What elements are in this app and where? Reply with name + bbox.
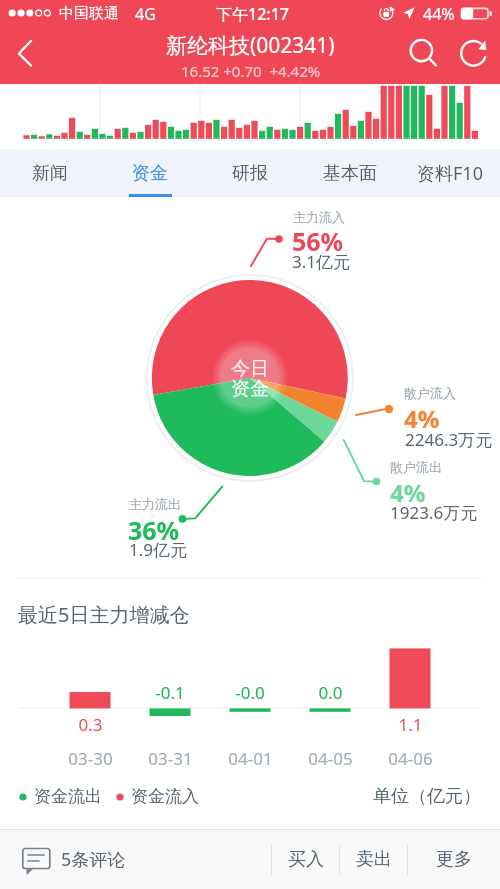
staticText: 4% [390, 476, 426, 509]
staticText: 更多 [436, 848, 472, 871]
button[interactable]: 资料F10 [400, 149, 500, 197]
staticText: 04-06 [388, 747, 433, 770]
staticText: 04-05 [308, 747, 353, 770]
button[interactable]: Search [396, 25, 448, 84]
staticText: 下午12:17 [216, 3, 289, 25]
staticText: 基本面 [323, 162, 377, 185]
staticText: 36% [128, 513, 180, 547]
staticText: 资金 [231, 377, 269, 401]
staticText: 4% [404, 402, 440, 435]
button[interactable]: 基本面 [300, 149, 400, 197]
button[interactable]: 买入 [272, 830, 339, 889]
staticText: 资金流出 [34, 786, 102, 807]
staticText: 今日 [231, 357, 269, 381]
staticText: 新闻 [32, 162, 68, 185]
staticText: 5条评论 [61, 847, 126, 872]
staticText: 中国联通 [59, 4, 119, 23]
button[interactable]: 资金 [100, 149, 200, 197]
staticText: 1.1 [398, 713, 423, 736]
staticText: -0.0 [235, 681, 265, 704]
staticText: 4G [135, 3, 156, 25]
staticText: 资金流入 [131, 786, 199, 807]
staticText: 03-30 [68, 747, 113, 770]
staticText: 03-31 [148, 747, 193, 770]
staticText: 卖出 [356, 848, 392, 871]
staticText: 主力流出 [129, 496, 181, 512]
button[interactable]: 5条评论 [22, 830, 271, 889]
staticText: 散户流出 [390, 459, 442, 475]
staticText: 散户流入 [404, 385, 456, 401]
button[interactable]: 卖出 [340, 830, 407, 889]
staticText: 04-01 [228, 747, 273, 770]
button[interactable]: 研报 [200, 149, 300, 197]
staticText: 资料F10 [417, 161, 483, 186]
staticText: 3.1亿元 [292, 250, 351, 273]
staticText: 1.9亿元 [129, 538, 188, 561]
staticText: 0.3 [78, 713, 103, 736]
staticText: 新纶科技(002341) [166, 31, 335, 60]
staticText: 2246.3万元 [405, 428, 493, 451]
staticText: 44% [423, 3, 455, 25]
staticText: 最近5日主力增减仓 [18, 601, 190, 628]
button[interactable]: 新闻 [0, 149, 100, 197]
staticText: 56% [292, 224, 344, 258]
staticText: 单位（亿元） [373, 785, 481, 808]
staticText: 1923.6万元 [390, 501, 478, 524]
staticText: 主力流入 [293, 209, 345, 225]
staticText: 16.52 +0.70 +4.42% [181, 61, 321, 81]
staticText: -0.1 [155, 681, 185, 704]
button[interactable]: 更多 [408, 830, 500, 889]
staticText: 资金 [132, 162, 168, 185]
staticText: 研报 [232, 162, 268, 185]
staticText: 0.0 [318, 681, 343, 704]
staticText: 买入 [288, 848, 324, 871]
button[interactable]: Back [0, 25, 52, 84]
button[interactable]: Refresh [448, 25, 500, 84]
